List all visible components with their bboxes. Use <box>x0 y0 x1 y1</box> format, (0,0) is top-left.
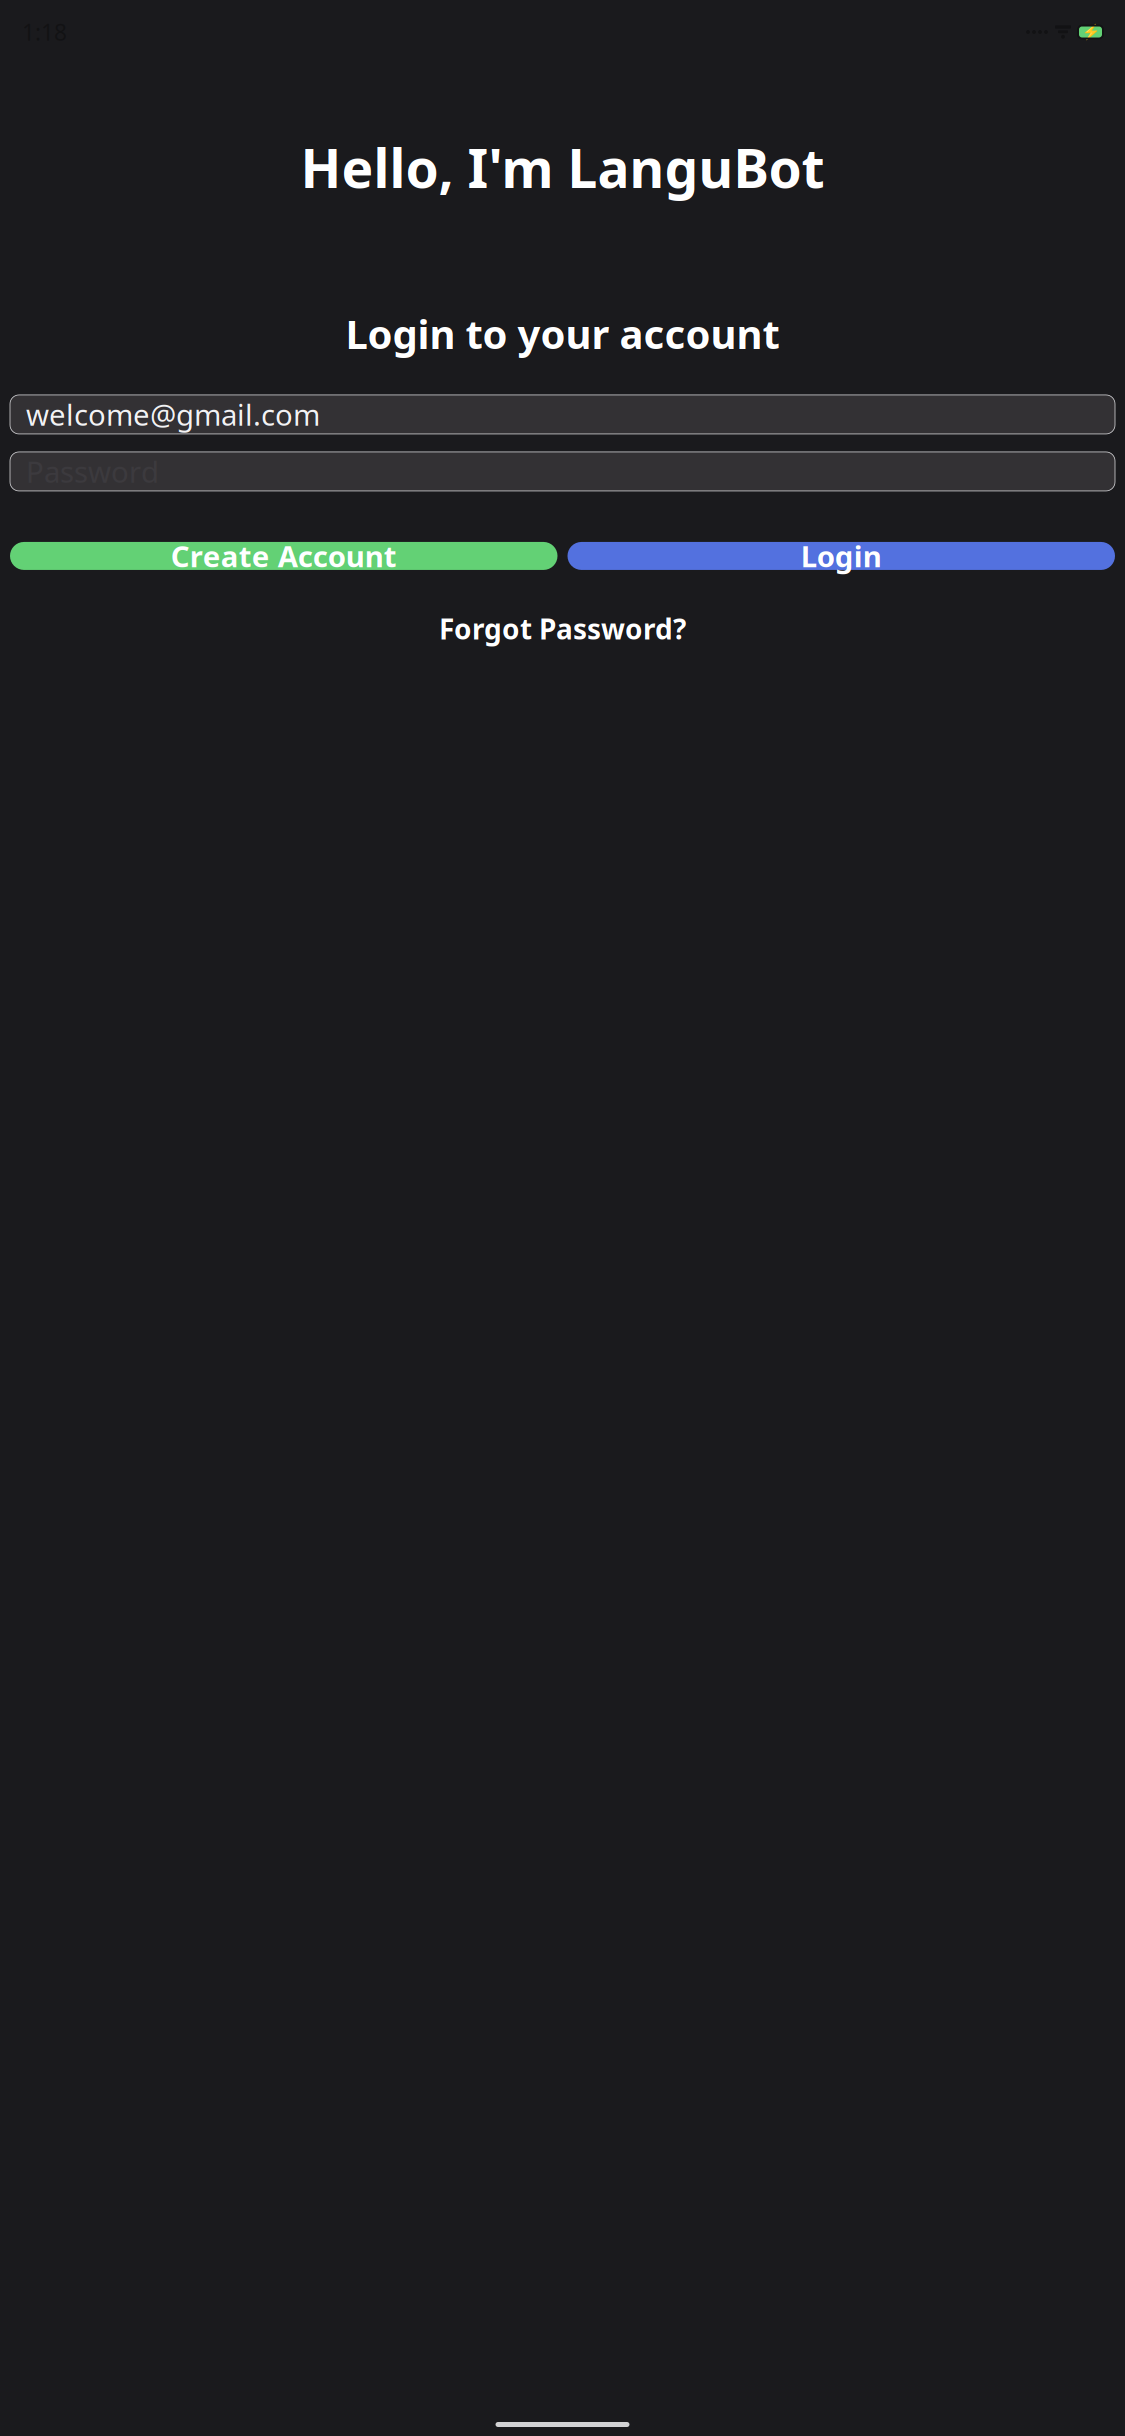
staticText: Login <box>801 536 882 575</box>
button[interactable]: Create Account <box>10 542 557 570</box>
staticText: Password <box>26 452 159 491</box>
staticText: Hello, I'm LanguBot <box>300 132 824 203</box>
button[interactable]: Login <box>567 542 1115 570</box>
staticText: Forgot Password? <box>439 610 686 647</box>
staticText: Create Account <box>171 536 397 575</box>
staticText: welcome@gmail.com <box>26 395 320 434</box>
staticText: ⚡ <box>1081 24 1099 40</box>
staticText: Login to your account <box>345 307 779 360</box>
button[interactable]: Forgot Password? <box>427 604 698 653</box>
